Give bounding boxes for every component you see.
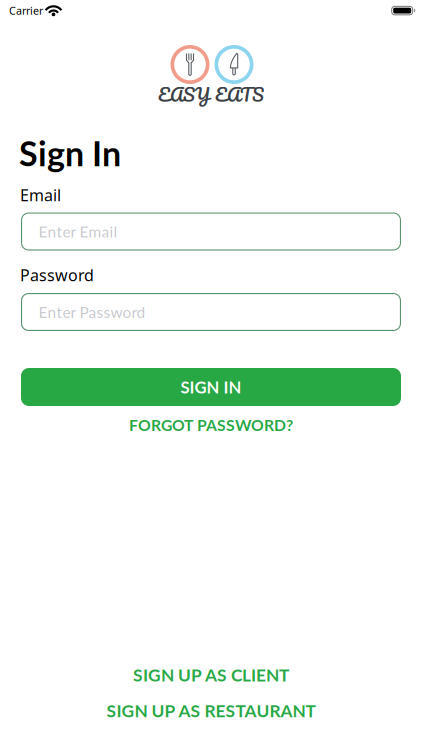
button[interactable]: SIGN IN [21, 368, 401, 406]
staticText: Password [20, 264, 94, 286]
staticText: Enter Email [38, 222, 117, 241]
staticText: Sign In [19, 133, 121, 173]
staticText: Enter Password [38, 303, 145, 321]
staticText: EASY EATS [158, 79, 264, 109]
staticText: Email [20, 184, 61, 206]
button[interactable]: Enter Email [21, 212, 401, 250]
staticText: SIGN UP AS RESTAURANT [106, 700, 315, 721]
button[interactable]: FORGOT PASSWORD? [129, 416, 293, 434]
button[interactable]: Enter Password [21, 293, 401, 331]
staticText: SIGN IN [180, 377, 241, 397]
button[interactable]: SIGN UP AS CLIENT [133, 664, 289, 685]
staticText: SIGN UP AS CLIENT [133, 664, 289, 685]
button[interactable]: SIGN UP AS RESTAURANT [106, 700, 315, 721]
staticText: Carrier [9, 3, 43, 18]
staticText: FORGOT PASSWORD? [129, 416, 293, 434]
